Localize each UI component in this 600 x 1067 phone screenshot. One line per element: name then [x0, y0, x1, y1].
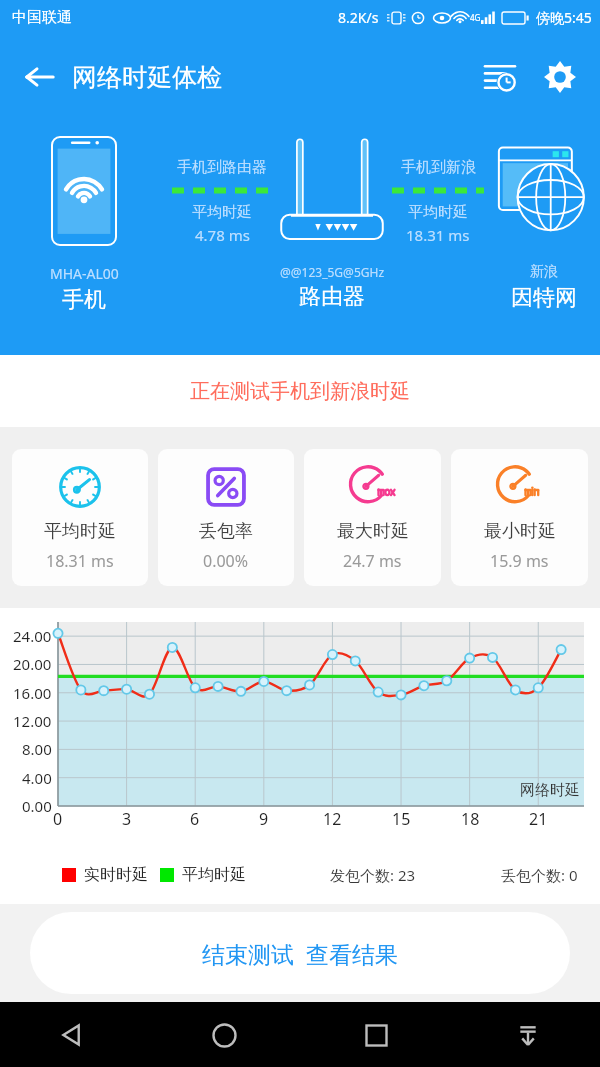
staticText: 新浪	[530, 263, 558, 281]
staticText: 4G	[470, 12, 481, 23]
staticText: 网络时延	[520, 781, 580, 800]
button[interactable]: Back	[46, 1009, 98, 1061]
staticText: 0	[53, 808, 63, 830]
staticText: 18.31 ms	[46, 550, 114, 572]
staticText: 正在测试手机到新浪时延	[190, 379, 410, 404]
staticText: 4.78 ms	[195, 225, 250, 245]
button[interactable]: 最小时延	[451, 449, 588, 586]
button[interactable]: History	[474, 51, 526, 103]
staticText: 结束测试 查看结果	[202, 938, 398, 969]
staticText: 发包个数: 23	[330, 865, 416, 885]
button[interactable]: 结束测试 查看结果	[30, 912, 570, 994]
staticText: 平均时延	[182, 865, 246, 885]
staticText: 15	[392, 808, 411, 830]
staticText: 24.7 ms	[343, 550, 402, 572]
staticText: 网络时延体检	[72, 62, 222, 93]
button[interactable]: 丢包率	[158, 449, 294, 586]
staticText: 傍晚5:45	[536, 8, 592, 27]
staticText: 路由器	[299, 283, 365, 311]
button[interactable]: Back	[14, 51, 66, 103]
staticText: 0.00	[22, 796, 52, 816]
staticText: 平均时延	[408, 203, 468, 222]
staticText: 12.00	[13, 711, 52, 731]
staticText: 平均时延	[192, 203, 252, 222]
staticText: @@123_5G@5GHz	[280, 264, 385, 280]
staticText: 8.00	[22, 739, 52, 759]
button[interactable]: 最大时延	[304, 449, 441, 586]
staticText: 6	[190, 808, 200, 830]
button[interactable]: Recents	[350, 1009, 402, 1061]
staticText: 24.00	[13, 626, 52, 646]
staticText: 4.00	[22, 768, 52, 788]
staticText: 16.00	[13, 683, 52, 703]
staticText: 最大时延	[337, 520, 409, 543]
staticText: 0.00%	[203, 550, 249, 572]
button[interactable]: Settings	[534, 51, 586, 103]
staticText: 平均时延	[44, 520, 116, 543]
button[interactable]: 平均时延	[12, 449, 148, 586]
staticText: 丢包率	[199, 520, 253, 543]
staticText: 18.31 ms	[406, 225, 470, 245]
staticText: 中国联通	[12, 8, 72, 27]
staticText: 15.9 ms	[490, 550, 549, 572]
staticText: 丢包个数: 0	[501, 865, 578, 885]
staticText: 18	[461, 808, 480, 830]
staticText: 最小时延	[484, 520, 556, 543]
staticText: 9	[259, 808, 269, 830]
staticText: MHA-AL00	[50, 264, 119, 283]
staticText: 手机	[62, 286, 106, 314]
staticText: 实时时延	[84, 865, 148, 885]
staticText: 8.2K/s	[338, 8, 379, 27]
button[interactable]: Home	[198, 1009, 250, 1061]
staticText: 12	[323, 808, 342, 830]
staticText: 手机到新浪	[401, 158, 476, 177]
button[interactable]: Hide navigation bar	[502, 1009, 554, 1061]
staticText: 手机到路由器	[177, 158, 267, 177]
staticText: 因特网	[511, 284, 577, 312]
staticText: 21	[529, 808, 548, 830]
staticText: 3	[122, 808, 132, 830]
staticText: 20.00	[13, 654, 52, 674]
